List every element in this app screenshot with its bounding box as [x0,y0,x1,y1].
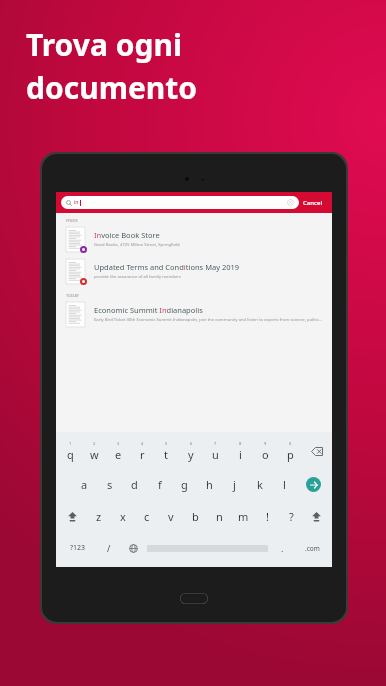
staticText: Economic Summit Indianapolis [94,305,203,315]
button[interactable]: 7 [203,435,228,468]
button[interactable]: h [197,468,222,500]
button[interactable]: 6 [178,435,203,468]
button[interactable]: g [172,468,197,500]
staticText: r [140,447,145,462]
staticText: 6 [190,441,193,446]
button[interactable]: d [122,468,147,500]
staticText: c [144,509,150,524]
button[interactable]: b [183,500,207,532]
staticText: Good Books, 4725 Milton Street, Springfi… [94,242,324,248]
staticText: .com [305,544,320,553]
button[interactable]: Change language [121,532,145,564]
staticText: Early Bird Ticket 30th Economic Summit I… [94,317,324,323]
staticText: l [283,477,286,492]
button[interactable]: c [135,500,159,532]
button[interactable]: 3 [106,435,130,468]
staticText: 5 [165,441,168,446]
button[interactable]: Economic Summit Indianapolis [56,299,332,331]
staticText: 1 [69,441,72,446]
staticText: z [96,509,102,524]
button[interactable]: z [86,500,111,532]
staticText: TODAY [66,293,79,298]
button[interactable]: Shift [58,500,86,532]
staticText: b [192,509,199,524]
staticText: 4 [141,441,144,446]
button[interactable]: 5 [154,435,178,468]
staticText: u [212,447,219,462]
button[interactable]: m [231,500,255,532]
button[interactable]: 1 [58,435,82,468]
button[interactable]: v [159,500,183,532]
staticText: 3 [117,441,120,446]
button[interactable]: a [72,468,97,500]
button[interactable]: . [270,532,294,564]
button[interactable]: x [111,500,135,532]
button[interactable]: Cancel [299,197,327,209]
staticText: p [287,447,294,462]
staticText: m [238,509,249,524]
staticText: g [181,477,188,492]
staticText: x [120,509,126,524]
button[interactable]: 8 [228,435,253,468]
button[interactable]: f [147,468,172,500]
staticText: i [239,447,242,462]
staticText: d [131,477,138,492]
staticText: 0 [289,441,292,446]
button[interactable]: 4 [130,435,154,468]
staticText: y [188,447,194,462]
button[interactable]: Updated Terms and Conditions May 2019 [56,256,332,288]
button[interactable]: .com [294,532,330,564]
staticText: 2 [93,441,96,446]
staticText: . [281,542,284,554]
staticText: o [262,447,269,462]
button[interactable]: 2 [82,435,106,468]
staticText: j [233,477,236,492]
staticText: a [81,477,88,492]
staticText: k [257,477,263,492]
button[interactable]: / [97,532,121,564]
staticText: / [107,542,111,554]
button[interactable]: ! [255,500,279,532]
staticText: v [168,509,174,524]
button[interactable]: s [97,468,122,500]
staticText: provide the assurance of all family memb… [94,274,324,280]
staticText: 9 [264,441,267,446]
staticText: t [164,447,168,462]
staticText: Updated Terms and Conditions May 2019 [94,262,240,272]
staticText: h [206,477,213,492]
staticText: 7 [214,441,217,446]
staticText: f [158,477,162,492]
staticText: Cancel [303,199,323,207]
button[interactable]: j [222,468,247,500]
button[interactable]: Invoice Book Store [56,224,332,256]
button[interactable]: l [272,468,297,500]
staticText: n [216,509,223,524]
button[interactable]: 9 [253,435,278,468]
staticText: documento [26,67,198,108]
staticText: Trova ogni [26,24,182,65]
staticText: in [74,199,79,206]
button[interactable]: 0 [278,435,303,468]
staticText: ! [266,509,269,524]
button[interactable]: n [207,500,231,532]
staticText: ?123 [70,543,86,553]
staticText: 8 [239,441,242,446]
staticText: q [67,447,74,462]
staticText: s [107,477,113,492]
button[interactable]: k [247,468,272,500]
button[interactable]: in [61,196,299,209]
staticText: w [90,447,99,462]
button[interactable]: Enter [297,468,330,500]
staticText: ? [289,509,294,524]
staticText: Invoice Book Store [94,230,160,240]
button[interactable]: ?123 [58,532,97,564]
button[interactable]: Clear [287,199,294,206]
button[interactable]: Shift [303,500,330,532]
button[interactable]: ? [279,500,303,532]
staticText: e [115,447,122,462]
staticText: FINDS [66,218,78,223]
button[interactable]: Backspace [303,435,330,468]
